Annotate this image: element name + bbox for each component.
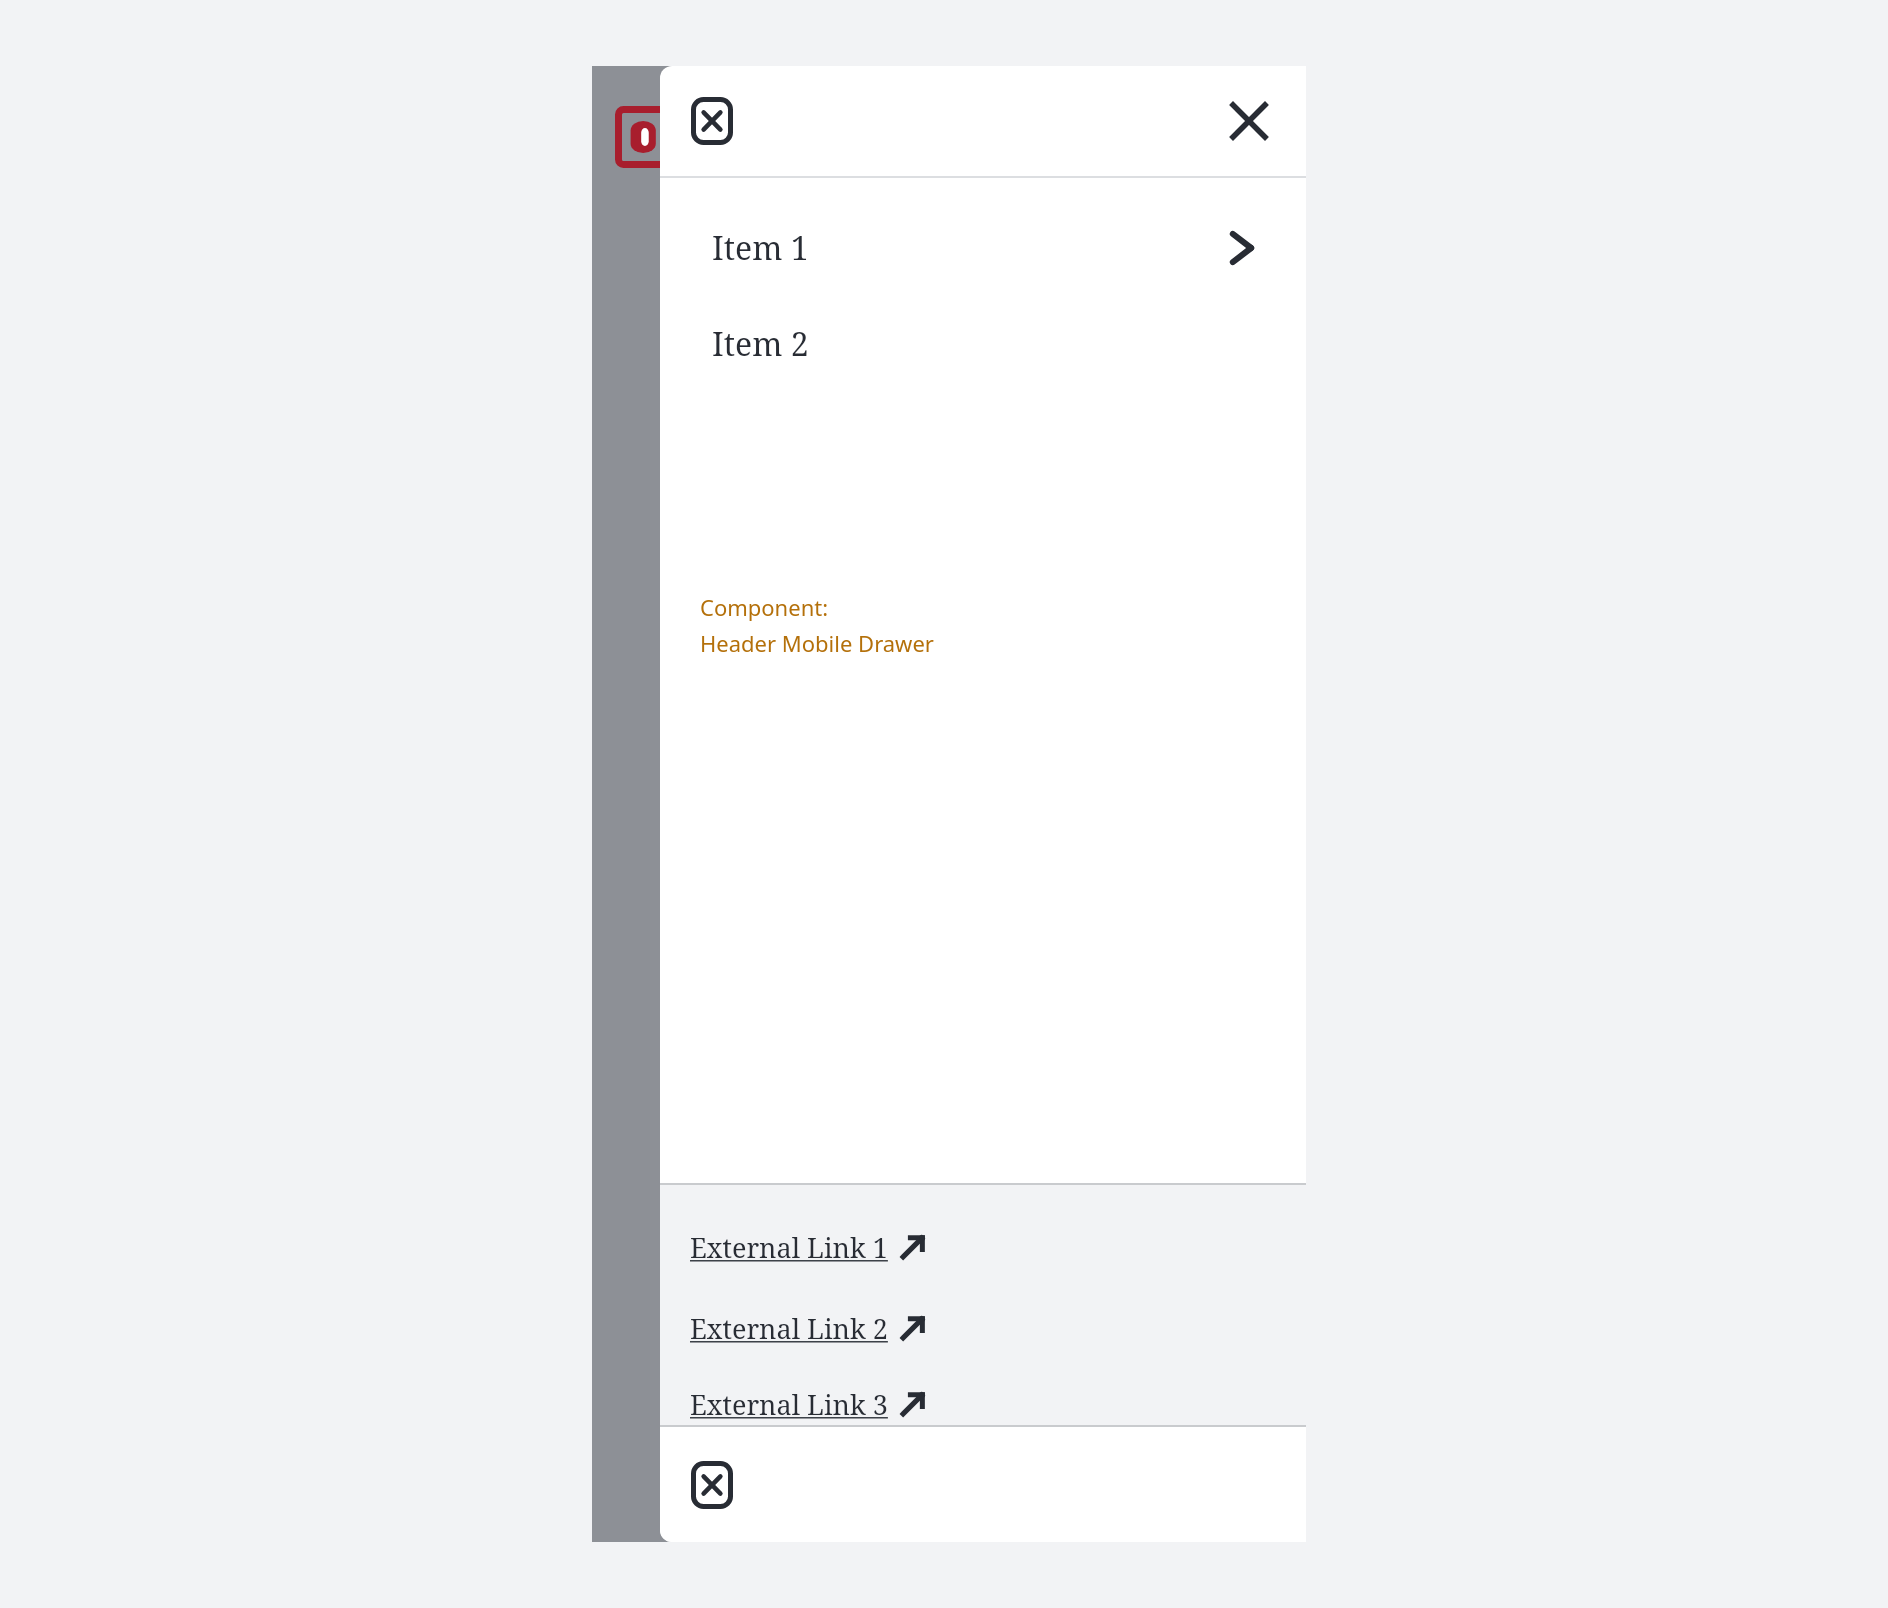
button[interactable]: Close [1214, 86, 1284, 156]
button[interactable]: External Link 3 [660, 1383, 946, 1425]
staticText: Item 2 [712, 322, 809, 366]
staticText: Header Mobile Drawer [700, 628, 934, 658]
button[interactable]: Item 1 [660, 220, 1306, 276]
button[interactable]: External Link 1 [660, 1221, 946, 1273]
button[interactable]: Logo placeholder [680, 89, 744, 153]
staticText: Component: [700, 592, 829, 622]
staticText: External Link 3 [690, 1386, 888, 1423]
staticText: External Link 1 [690, 1229, 888, 1266]
button[interactable]: Item 2 [660, 316, 1306, 372]
staticText: External Link 2 [690, 1310, 888, 1347]
staticText: Item 1 [712, 226, 809, 270]
button[interactable]: Logo placeholder [680, 1453, 744, 1517]
button[interactable]: External Link 2 [660, 1302, 946, 1354]
